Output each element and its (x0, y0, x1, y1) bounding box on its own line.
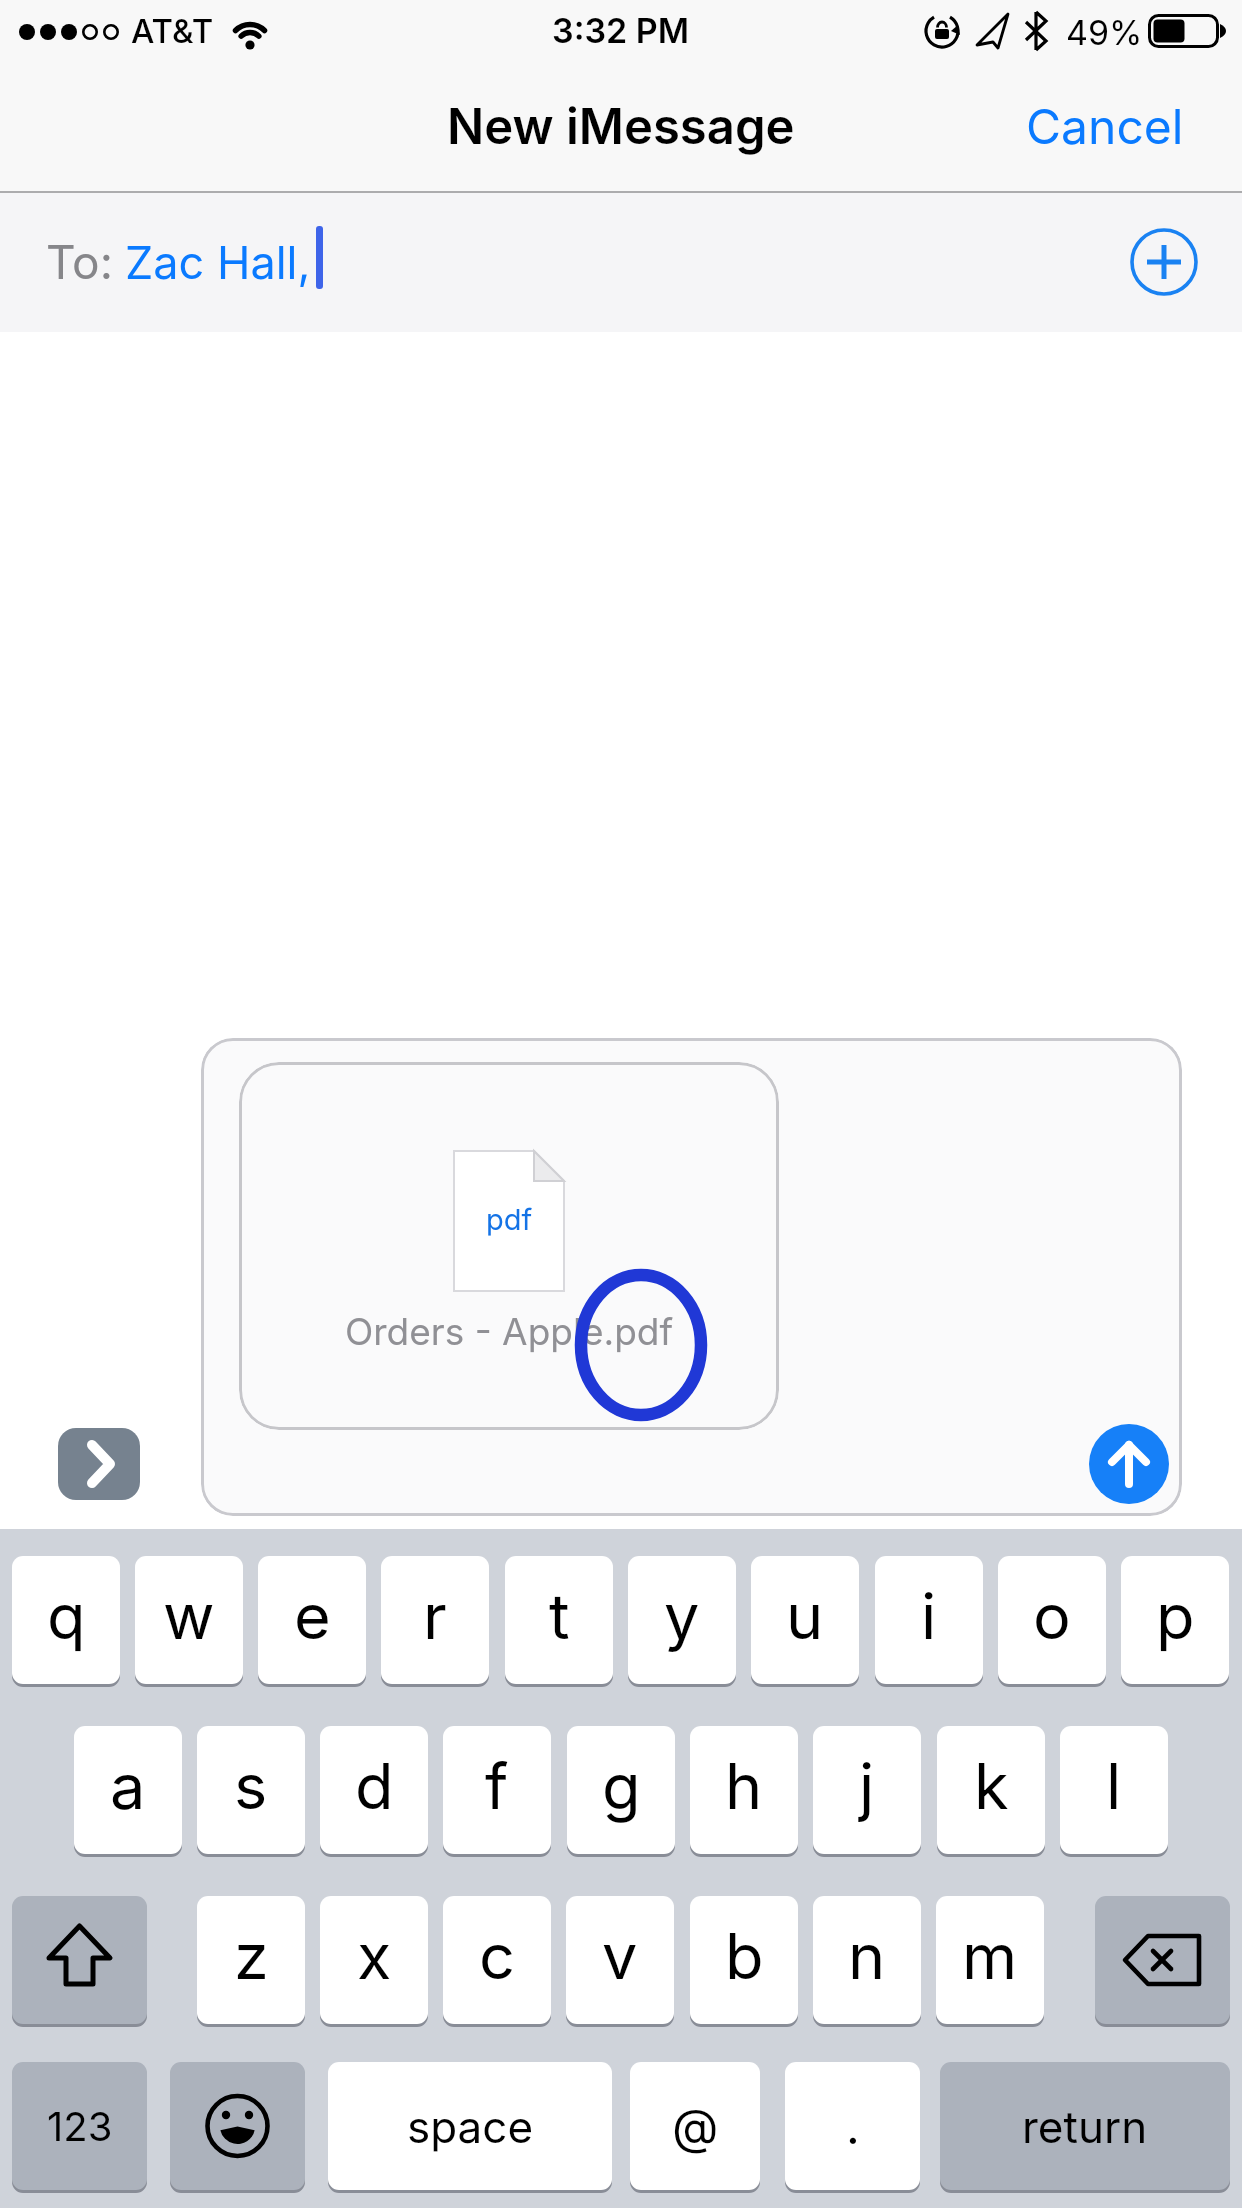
staticText: To: (46, 234, 113, 290)
staticText: l (1106, 1748, 1122, 1824)
button[interactable] (0, 193, 1242, 332)
staticText: y (664, 1578, 700, 1654)
button[interactable]: b (690, 1896, 798, 2024)
button[interactable]: d (320, 1726, 428, 1854)
staticText: New iMessage (447, 97, 795, 156)
button[interactable]: p (1121, 1556, 1229, 1684)
staticText: c (479, 1918, 515, 1994)
button[interactable]: t (505, 1556, 613, 1684)
staticText: d (355, 1748, 394, 1824)
button[interactable]: u (751, 1556, 859, 1684)
button[interactable]: a (74, 1726, 182, 1854)
staticText: v (602, 1918, 638, 1994)
button[interactable] (1089, 1424, 1169, 1504)
staticText: space (407, 2100, 534, 2153)
button[interactable] (12, 1896, 147, 2024)
button[interactable]: c (443, 1896, 551, 2024)
staticText: o (1033, 1578, 1071, 1654)
button[interactable]: i (875, 1556, 983, 1684)
button[interactable]: k (937, 1726, 1045, 1854)
staticText: k (974, 1748, 1009, 1824)
staticText: f (485, 1748, 509, 1824)
staticText: @ (672, 2097, 719, 2155)
button[interactable]: y (628, 1556, 736, 1684)
staticText: m (962, 1918, 1018, 1994)
staticText: return (1022, 2100, 1148, 2153)
staticText: p (1156, 1578, 1195, 1654)
staticText: q (47, 1578, 86, 1654)
staticText: Zac Hall, (125, 235, 311, 289)
staticText: r (423, 1578, 447, 1654)
staticText: pdf (486, 1202, 533, 1237)
staticText: t (549, 1578, 570, 1654)
staticText: w (163, 1578, 215, 1654)
button[interactable]: j (813, 1726, 921, 1854)
button[interactable]: v (566, 1896, 674, 2024)
staticText: e (294, 1578, 331, 1654)
staticText: u (786, 1578, 824, 1654)
button[interactable]: l (1060, 1726, 1168, 1854)
button[interactable]: r (381, 1556, 489, 1684)
button[interactable]: Cancel (1005, 96, 1205, 156)
staticText: z (234, 1918, 269, 1994)
button[interactable]: o (998, 1556, 1106, 1684)
staticText: h (725, 1748, 763, 1824)
staticText: x (357, 1918, 392, 1994)
staticText: a (110, 1748, 146, 1824)
button[interactable] (1095, 1896, 1230, 2024)
button[interactable]: . (785, 2062, 920, 2190)
button[interactable]: space (328, 2062, 612, 2190)
staticText: 123 (47, 2102, 113, 2150)
staticText: 49% (1066, 12, 1143, 53)
button[interactable]: m (936, 1896, 1044, 2024)
button[interactable]: n (813, 1896, 921, 2024)
staticText: n (848, 1918, 886, 1994)
button[interactable]: return (940, 2062, 1230, 2190)
staticText: s (234, 1748, 268, 1824)
button[interactable]: 123 (12, 2062, 147, 2190)
button[interactable]: e (258, 1556, 366, 1684)
button[interactable]: h (690, 1726, 798, 1854)
button[interactable]: z (197, 1896, 305, 2024)
staticText: b (725, 1918, 764, 1994)
staticText: 3:32 PM (552, 10, 690, 51)
button[interactable] (239, 1062, 779, 1430)
button[interactable] (1126, 224, 1202, 300)
button[interactable]: x (320, 1896, 428, 2024)
button[interactable] (58, 1428, 140, 1500)
staticText: j (859, 1748, 875, 1824)
staticText: Cancel (1026, 97, 1184, 155)
staticText: g (602, 1748, 641, 1824)
button[interactable]: s (197, 1726, 305, 1854)
button[interactable]: q (12, 1556, 120, 1684)
button[interactable]: g (567, 1726, 675, 1854)
button[interactable]: @ (630, 2062, 760, 2190)
button[interactable] (170, 2062, 305, 2190)
staticText: i (921, 1578, 937, 1654)
staticText: . (846, 2097, 860, 2155)
staticText: AT&T (131, 11, 214, 51)
button[interactable]: f (443, 1726, 551, 1854)
button[interactable]: w (135, 1556, 243, 1684)
staticText: Orders - Apple.pdf (345, 1309, 674, 1354)
